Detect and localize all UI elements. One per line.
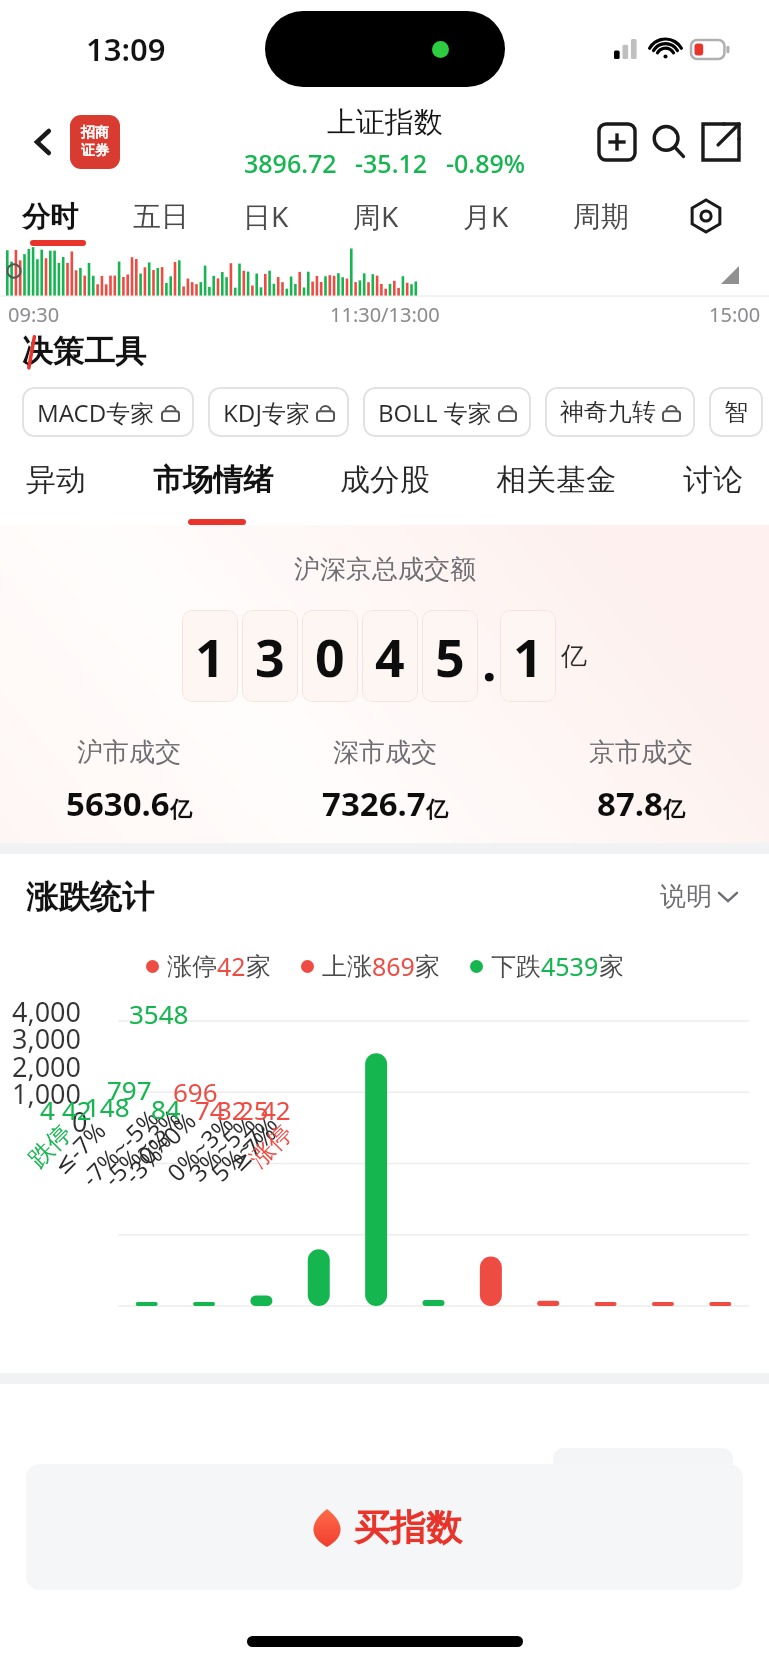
- staticText: -0.89%: [446, 146, 526, 180]
- staticText: .: [482, 625, 497, 696]
- staticText: 0: [315, 621, 345, 692]
- staticText: BOLL 专家: [378, 396, 492, 429]
- staticText: 上证指数: [327, 104, 443, 141]
- staticText: 相关基金: [496, 461, 616, 499]
- button[interactable]: Share: [695, 116, 747, 168]
- staticText: 0%: [130, 1124, 178, 1171]
- button[interactable]: 成分股: [336, 451, 434, 509]
- staticText: 讨论: [683, 461, 743, 499]
- staticText: 11:30/13:00: [330, 301, 440, 328]
- button[interactable]: 相关基金: [492, 451, 620, 509]
- button[interactable]: 五日: [133, 186, 243, 246]
- staticText: 74: [195, 1092, 225, 1127]
- staticText: 五日: [133, 199, 189, 234]
- staticText: 0: [72, 1103, 88, 1140]
- button[interactable]: Back: [18, 116, 70, 168]
- staticText: 3%~5%: [181, 1107, 263, 1188]
- staticText: -7%~-5%: [73, 1101, 165, 1193]
- staticText: 797: [107, 1072, 152, 1107]
- staticText: 说明: [660, 880, 712, 913]
- staticText: 亿: [426, 796, 448, 824]
- staticText: 4539: [541, 949, 599, 983]
- button[interactable]: Settings: [683, 193, 729, 239]
- staticText: 5630.6: [66, 781, 170, 826]
- button[interactable]: MACD专家: [22, 387, 194, 437]
- staticText: 1: [195, 621, 225, 692]
- button[interactable]: 分时: [22, 186, 133, 246]
- button[interactable]: Add: [591, 116, 643, 168]
- staticText: 招商: [81, 124, 109, 142]
- staticText: 32: [217, 1092, 247, 1127]
- staticText: 下跌: [491, 951, 541, 982]
- staticText: 证券: [81, 142, 109, 160]
- staticText: 涨停: [243, 1118, 299, 1174]
- staticText: -3%~0%: [116, 1104, 203, 1191]
- staticText: 3548: [129, 996, 189, 1031]
- button[interactable]: 买指数: [26, 1464, 743, 1590]
- staticText: 7326.7: [322, 781, 426, 826]
- staticText: 日K: [243, 197, 289, 235]
- staticText: 沪深京总成交额: [294, 553, 476, 586]
- staticText: 1: [513, 621, 543, 692]
- staticText: ≥7%: [221, 1117, 283, 1178]
- staticText: 上涨: [322, 951, 372, 982]
- staticText: ≤-7%: [45, 1114, 113, 1181]
- button[interactable]: 市场情绪: [149, 451, 277, 509]
- button[interactable]: 周K: [353, 186, 463, 246]
- button[interactable]: 日K: [243, 186, 353, 246]
- button[interactable]: 说明: [654, 874, 743, 919]
- staticText: 15:00: [709, 301, 761, 328]
- button[interactable]: 周期: [573, 186, 683, 246]
- staticText: 神奇九转: [560, 397, 656, 427]
- staticText: 84: [151, 1091, 181, 1126]
- button[interactable]: 月K: [463, 186, 573, 246]
- staticText: 亿: [170, 796, 192, 824]
- button[interactable]: BOLL 专家: [363, 387, 531, 437]
- staticText: 成分股: [340, 461, 430, 499]
- staticText: 京市成交: [589, 736, 693, 769]
- button[interactable]: KDJ专家: [208, 387, 349, 437]
- button[interactable]: 异动: [22, 451, 90, 509]
- staticText: MACD专家: [37, 396, 155, 429]
- staticText: 亿: [663, 796, 685, 824]
- staticText: 涨停: [167, 951, 217, 982]
- staticText: 月K: [463, 197, 509, 235]
- staticText: 4,000: [12, 993, 82, 1030]
- staticText: 决策工具: [22, 332, 146, 371]
- staticText: 869: [372, 949, 415, 983]
- staticText: 5%~7%: [203, 1107, 285, 1188]
- button[interactable]: CMS logo: [70, 115, 120, 169]
- staticText: 3: [255, 621, 285, 692]
- button[interactable]: Search: [643, 116, 695, 168]
- staticText: 1,000: [12, 1075, 82, 1112]
- staticText: 家: [246, 951, 271, 982]
- button[interactable]: 讨论: [679, 451, 747, 509]
- staticText: 市场情绪: [153, 461, 273, 499]
- staticText: 分时: [22, 199, 78, 234]
- staticText: 3896.72: [244, 146, 337, 180]
- staticText: 4: [375, 621, 405, 692]
- staticText: 智: [724, 397, 748, 427]
- staticText: 25: [239, 1092, 269, 1127]
- staticText: 亿: [561, 640, 587, 673]
- staticText: 沪市成交: [77, 736, 181, 769]
- staticText: 0%~3%: [159, 1107, 241, 1188]
- staticText: 涨跌统计: [26, 877, 154, 917]
- button[interactable]: 神奇九转: [545, 387, 695, 437]
- staticText: 2,000: [12, 1048, 82, 1085]
- staticText: -5%~-3%: [95, 1101, 187, 1193]
- staticText: 42: [217, 949, 246, 983]
- staticText: 周K: [353, 197, 399, 235]
- staticText: 4: [40, 1092, 55, 1127]
- staticText: KDJ专家: [223, 396, 310, 429]
- staticText: 深市成交: [333, 736, 437, 769]
- staticText: 13:09: [86, 28, 166, 70]
- staticText: 3,000: [12, 1020, 82, 1057]
- staticText: 跌停: [22, 1118, 78, 1174]
- staticText: 148: [85, 1089, 130, 1124]
- staticText: 家: [415, 951, 440, 982]
- staticText: 42: [62, 1092, 92, 1127]
- staticText: 5: [435, 621, 465, 692]
- button[interactable]: 智: [709, 387, 763, 437]
- staticText: 42: [261, 1092, 291, 1127]
